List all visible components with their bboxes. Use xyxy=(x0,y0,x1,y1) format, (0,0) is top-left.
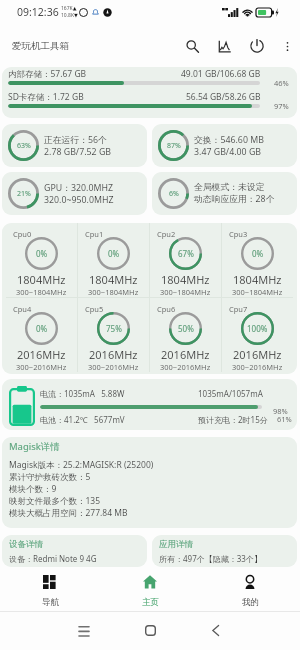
button[interactable]: 21% xyxy=(2,172,147,215)
button[interactable]: 主页 xyxy=(100,571,200,610)
button[interactable]: 应用详情 xyxy=(152,535,297,567)
button[interactable]: 我的 xyxy=(200,571,300,610)
staticText: 模块个数：9 xyxy=(9,483,57,495)
button[interactable]: More options xyxy=(274,26,300,66)
staticText: 09:12:36 xyxy=(17,5,59,19)
staticText: 56.54 GB/58.26 GB xyxy=(186,91,261,103)
staticText: Magisk版本：25.2:MAGISK:R (25200) xyxy=(9,459,154,471)
staticText: 模块大概占用空间：277.84 MB xyxy=(9,507,128,519)
staticText: 67% xyxy=(178,248,194,259)
staticText: 1035mA/1057mA xyxy=(198,388,263,399)
button[interactable]: 87% xyxy=(152,124,297,167)
staticText: 全局模式：未设定 xyxy=(194,182,265,193)
staticText: 10.8K▼ xyxy=(61,12,78,19)
button[interactable]: Home xyxy=(117,611,183,650)
staticText: 46% xyxy=(274,78,289,88)
staticText: 300~2016MHz xyxy=(160,362,211,372)
staticText: 0% xyxy=(252,248,264,259)
button[interactable]: Cpu1 xyxy=(78,223,149,297)
staticText: Cpu1 xyxy=(85,229,104,239)
staticText: Cpu2 xyxy=(157,229,176,239)
staticText: Cpu0 xyxy=(13,229,32,239)
button[interactable]: Search xyxy=(176,26,208,66)
staticText: 0% xyxy=(108,248,120,259)
staticText: 2.78 GB/7.52 GB xyxy=(44,146,111,158)
staticText: 21% xyxy=(17,189,31,199)
staticText: 正在运行：56个 xyxy=(44,134,107,146)
button[interactable]: Cpu2 xyxy=(150,223,221,297)
staticText: 主页 xyxy=(142,597,159,608)
button[interactable]: 63% xyxy=(2,124,147,167)
staticText: 49.01 GB/106.68 GB xyxy=(181,68,261,80)
staticText: 3.47 GB/4.00 GB xyxy=(194,146,261,158)
staticText: Cpu6 xyxy=(157,304,176,314)
staticText: 300~1804MHz xyxy=(160,287,211,297)
staticText: 300~2016MHz xyxy=(232,362,283,372)
staticText: 87% xyxy=(167,141,181,151)
staticText: 映射文件最多个数：135 xyxy=(9,495,101,507)
staticText: 2016MHz xyxy=(17,347,66,362)
staticText: 电池：41.2℃ 5677mV xyxy=(40,414,125,425)
staticText: Cpu5 xyxy=(85,304,104,314)
button[interactable]: Cpu3 xyxy=(222,223,293,297)
staticText: 动态响应应用：28个 xyxy=(194,193,275,205)
button[interactable]: Statistics xyxy=(208,26,240,66)
button[interactable]: 导航 xyxy=(0,571,100,610)
staticText: 应用详情 xyxy=(159,539,193,550)
staticText: 导航 xyxy=(42,597,59,608)
button[interactable]: Cpu7 xyxy=(222,298,293,372)
staticText: 1804MHz xyxy=(233,272,282,287)
button[interactable]: Cpu4 xyxy=(6,298,77,372)
button[interactable]: Cpu6 xyxy=(150,298,221,372)
staticText: 300~1804MHz xyxy=(16,287,67,297)
staticText: Magisk详情 xyxy=(9,440,60,453)
staticText: 300~1804MHz xyxy=(232,287,283,297)
staticText: 63% xyxy=(17,141,31,151)
staticText: 98% xyxy=(273,406,288,416)
staticText: 内部存储：57.67 GB xyxy=(8,68,87,80)
staticText: 设备：Redmi Note 9 4G xyxy=(9,553,97,564)
staticText: 电流：1035mA 5.88W xyxy=(40,388,125,399)
staticText: 167K▲ xyxy=(61,5,77,12)
button[interactable]: 设备详情 xyxy=(2,535,147,567)
staticText: 97% xyxy=(274,101,289,111)
staticText: 300~2016MHz xyxy=(16,362,67,372)
button[interactable]: Recents xyxy=(51,611,117,650)
staticText: 6% xyxy=(169,189,179,199)
staticText: 2016MHz xyxy=(233,347,282,362)
button[interactable]: Magisk详情 xyxy=(2,437,297,528)
staticText: 0% xyxy=(36,248,48,259)
staticText: 交换：546.60 MB xyxy=(194,134,264,146)
button[interactable]: 电流：1035mA 5.88W xyxy=(2,379,297,430)
staticText: 1804MHz xyxy=(89,272,138,287)
staticText: 320.0~950.0MHZ xyxy=(44,194,114,206)
staticText: 我的 xyxy=(242,597,259,608)
staticText: GPU：320.0MHZ xyxy=(44,182,113,194)
staticText: 2016MHz xyxy=(89,347,138,362)
staticText: 50% xyxy=(178,323,194,334)
button[interactable]: 6% xyxy=(152,172,297,215)
staticText: SD卡存储：1.72 GB xyxy=(8,91,84,103)
button[interactable]: Cpu5 xyxy=(78,298,149,372)
staticText: 100% xyxy=(247,323,268,334)
staticText: 61% xyxy=(277,414,292,424)
staticText: 75% xyxy=(106,323,122,334)
staticText: 爱玩机工具箱 xyxy=(12,40,69,52)
staticText: 0% xyxy=(36,323,48,334)
button[interactable]: 内部存储：57.67 GB xyxy=(2,67,297,118)
staticText: 2016MHz xyxy=(161,347,210,362)
staticText: Cpu3 xyxy=(229,229,248,239)
button[interactable]: Power xyxy=(240,26,274,66)
staticText: Cpu7 xyxy=(229,304,248,314)
staticText: 300~2016MHz xyxy=(88,362,139,372)
staticText: 设备详情 xyxy=(9,539,43,550)
staticText: 1804MHz xyxy=(17,272,66,287)
staticText: 累计守护救砖次数：5 xyxy=(9,471,91,483)
button[interactable]: Cpu0 xyxy=(6,223,77,297)
staticText: Cpu4 xyxy=(13,304,32,314)
staticText: 所有：497个【隐藏：33个】 xyxy=(159,553,262,564)
staticText: 预计充电：2时15分 xyxy=(198,414,268,425)
button[interactable]: Back xyxy=(182,611,248,650)
staticText: 1804MHz xyxy=(161,272,210,287)
staticText: 300~1804MHz xyxy=(88,287,139,297)
